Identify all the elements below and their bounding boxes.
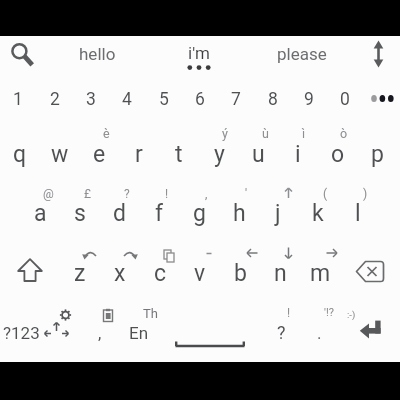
button[interactable]: 3 [73, 76, 109, 122]
button[interactable]: q [0, 126, 40, 182]
staticText: ò [340, 126, 348, 141]
staticText: o [331, 141, 345, 168]
staticText: j [275, 200, 281, 227]
button[interactable]: 4 [109, 76, 145, 122]
button[interactable]: t [159, 126, 199, 182]
staticText: x [114, 260, 126, 287]
staticText: t [175, 141, 183, 168]
button[interactable]: 2 [37, 76, 73, 122]
button[interactable]: 6 [182, 76, 218, 122]
staticText: a [34, 200, 47, 227]
staticText: 4 [122, 89, 132, 110]
staticText: :-) [347, 309, 356, 320]
button[interactable]: h [219, 185, 259, 241]
button[interactable]: j [258, 185, 298, 241]
button[interactable] [364, 88, 398, 110]
button[interactable]: o [318, 126, 358, 182]
staticText: ì [302, 126, 306, 141]
staticText: 1 [13, 89, 23, 110]
button[interactable]: 0 [327, 76, 363, 122]
button[interactable]: ?123 [0, 313, 43, 353]
button[interactable]: ? [263, 312, 299, 352]
staticText: ) [363, 187, 368, 201]
staticText: Th [143, 306, 158, 321]
staticText: è [103, 126, 110, 141]
button[interactable]: m [300, 245, 340, 301]
button[interactable]: i'm [164, 39, 234, 67]
staticText: m [310, 260, 331, 287]
button[interactable]: l [338, 185, 378, 241]
staticText: 5 [159, 89, 169, 110]
staticText: ù [262, 126, 269, 141]
staticText: £ [84, 187, 91, 201]
button[interactable]: f [139, 185, 179, 241]
button[interactable] [170, 336, 250, 352]
button[interactable]: n [260, 245, 300, 301]
button[interactable]: i [278, 126, 318, 182]
button[interactable]: e [79, 126, 119, 182]
button[interactable]: . [304, 313, 334, 353]
staticText: , [205, 187, 208, 201]
staticText: please [277, 44, 327, 64]
staticText: i'm [188, 43, 210, 63]
staticText: 7 [231, 89, 241, 110]
staticText: u [252, 141, 265, 168]
staticText: k [312, 200, 324, 227]
staticText: z [74, 260, 86, 287]
staticText: ! [165, 187, 169, 201]
button[interactable]: En [119, 313, 159, 353]
button[interactable]: z [60, 245, 100, 301]
staticText: f [155, 200, 163, 227]
button[interactable]: please [262, 40, 342, 68]
button[interactable]: 9 [291, 76, 327, 122]
button[interactable]: w [40, 126, 80, 182]
staticText: d [113, 200, 126, 227]
staticText: r [135, 141, 143, 168]
staticText: b [234, 260, 247, 287]
staticText: '!? [324, 306, 334, 319]
button[interactable]: g [179, 185, 219, 241]
button[interactable]: hello [62, 40, 132, 68]
button[interactable]: r [119, 126, 159, 182]
staticText: e [93, 141, 106, 168]
button[interactable]: u [238, 126, 278, 182]
staticText: ! [287, 306, 291, 320]
button[interactable]: 7 [218, 76, 254, 122]
staticText: 9 [304, 89, 314, 110]
button[interactable]: b [220, 245, 260, 301]
staticText: En [129, 323, 149, 343]
button[interactable]: y [199, 126, 239, 182]
button[interactable]: k [298, 185, 338, 241]
staticText: h [233, 200, 246, 227]
button[interactable]: p [357, 126, 397, 182]
button[interactable]: d [99, 185, 139, 241]
staticText: hello [79, 44, 116, 64]
button[interactable]: 1 [0, 76, 36, 122]
staticText: 2 [50, 89, 60, 110]
button[interactable]: 5 [146, 76, 182, 122]
staticText: 3 [86, 89, 96, 110]
staticText: y [214, 141, 225, 168]
staticText: q [13, 141, 27, 168]
staticText: , [98, 323, 102, 343]
button[interactable]: , [85, 313, 115, 353]
button[interactable] [6, 38, 36, 68]
button[interactable]: v [180, 245, 220, 301]
button[interactable] [369, 40, 389, 68]
button[interactable]: s [60, 185, 100, 241]
button[interactable]: x [100, 245, 140, 301]
staticText: ý [222, 126, 228, 141]
button[interactable]: a [20, 185, 60, 241]
staticText: ' [245, 187, 248, 201]
staticText: w [51, 141, 69, 168]
button[interactable] [352, 314, 390, 348]
staticText: 6 [195, 89, 205, 110]
button[interactable] [9, 253, 51, 291]
button[interactable] [42, 306, 76, 346]
staticText: ? [124, 187, 130, 201]
staticText: v [194, 260, 206, 287]
button[interactable]: c [140, 245, 180, 301]
staticText: @ [43, 187, 54, 201]
button[interactable] [352, 257, 390, 287]
button[interactable]: 8 [255, 76, 291, 122]
